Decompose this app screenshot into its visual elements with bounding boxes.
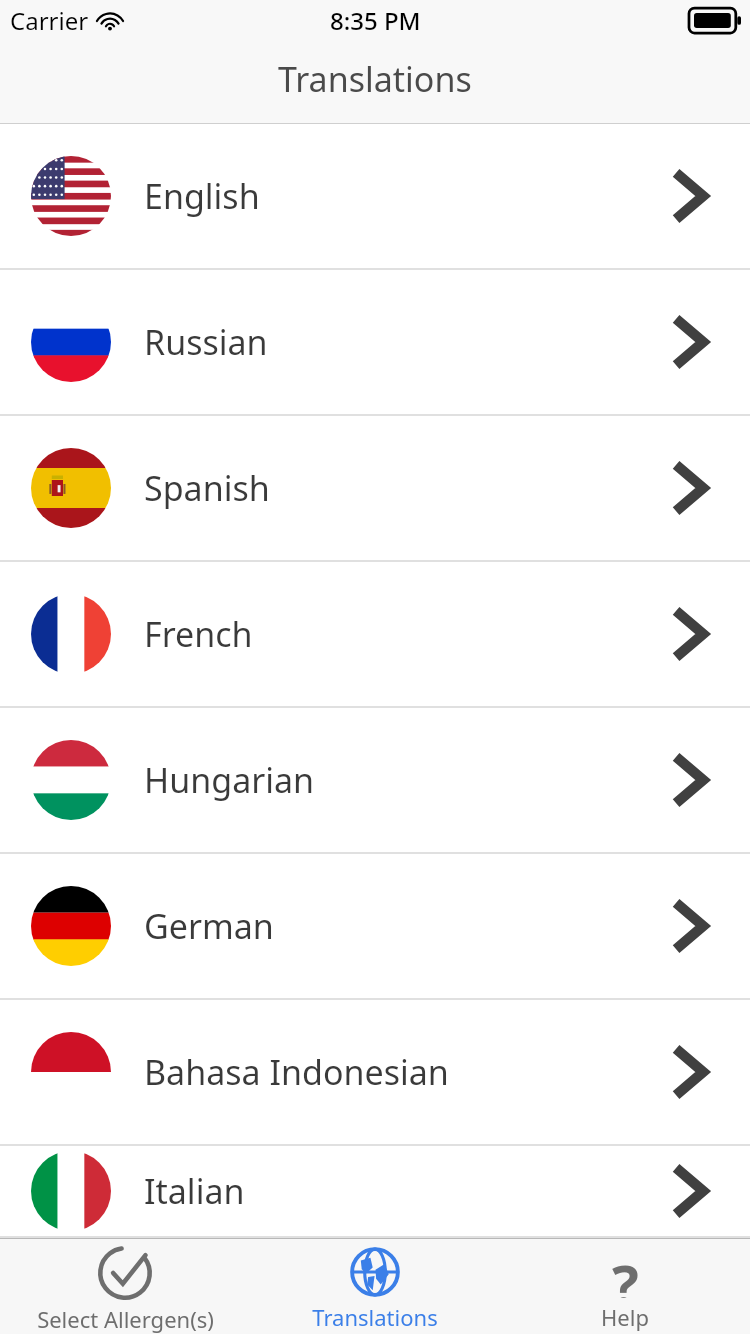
button[interactable]: German: [0, 854, 750, 1000]
button[interactable]: Select Allergen(s): [0, 1239, 250, 1334]
staticText: Translations: [278, 56, 472, 102]
button[interactable]: Italian: [0, 1146, 750, 1238]
staticText: German: [144, 903, 274, 949]
staticText: Bahasa Indonesian: [144, 1049, 449, 1095]
other: Open Spanish: [644, 443, 734, 533]
button[interactable]: Translations: [250, 1239, 500, 1332]
button[interactable]: French: [0, 562, 750, 708]
button[interactable]: Russian: [0, 270, 750, 416]
other: Open Italian: [644, 1146, 734, 1236]
button[interactable]: Spanish: [0, 416, 750, 562]
other: Open Bahasa Indonesian: [644, 1027, 734, 1117]
staticText: Translations: [312, 1302, 438, 1332]
staticText: Hungarian: [144, 757, 315, 803]
staticText: Select Allergen(s): [37, 1304, 214, 1334]
staticText: Spanish: [144, 465, 270, 511]
button[interactable]: Bahasa Indonesian: [0, 1000, 750, 1146]
button[interactable]: English: [0, 124, 750, 270]
staticText: Italian: [144, 1168, 245, 1214]
staticText: ?: [612, 1246, 639, 1298]
other: Open German: [644, 881, 734, 971]
other: Open Hungarian: [644, 735, 734, 825]
other: Open English: [644, 151, 734, 241]
button[interactable]: ?: [500, 1239, 750, 1332]
staticText: Help: [601, 1302, 649, 1332]
staticText: French: [144, 611, 253, 657]
staticText: 8:35 PM: [330, 4, 421, 37]
staticText: Russian: [144, 319, 268, 365]
staticText: English: [144, 173, 260, 219]
other: Open Russian: [644, 297, 734, 387]
staticText: Carrier: [10, 4, 89, 37]
button[interactable]: Hungarian: [0, 708, 750, 854]
other: Open French: [644, 589, 734, 679]
